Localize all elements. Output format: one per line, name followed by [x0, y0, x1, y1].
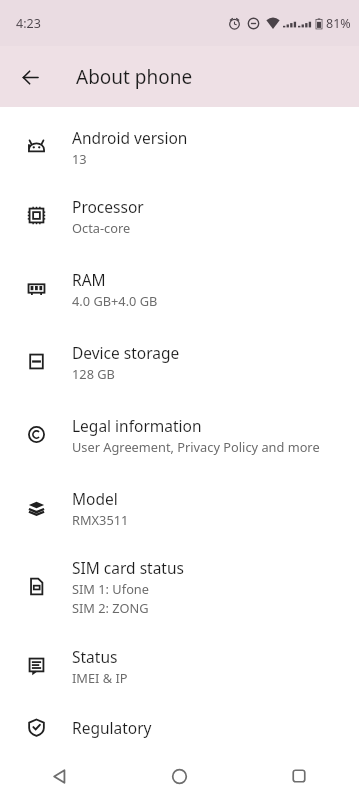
staticText: RAM [72, 269, 106, 290]
button[interactable]: Legal information [0, 398, 359, 471]
staticText: IMEI & IP [72, 669, 128, 686]
staticText: 4.0 GB+4.0 GB [72, 292, 158, 309]
button[interactable]: Regulatory [0, 702, 359, 752]
staticText: Status [72, 646, 118, 667]
button[interactable]: Status [0, 629, 359, 702]
staticText: RMX3511 [72, 511, 129, 528]
button[interactable]: RAM [0, 252, 359, 325]
button[interactable]: Model [0, 471, 359, 544]
button[interactable]: Device storage [0, 325, 359, 398]
staticText: About phone [76, 64, 193, 90]
staticText: Device storage [72, 342, 180, 363]
button[interactable]: Android version [0, 115, 359, 179]
staticText: 4:23 [16, 15, 41, 32]
button[interactable]: Processor [0, 179, 359, 252]
staticText: Android version [72, 127, 188, 148]
staticText: User Agreement, Privacy Policy and more [72, 438, 320, 455]
button[interactable]: SIM card status [0, 544, 359, 629]
staticText: 128 GB [72, 365, 115, 382]
button[interactable]: Back [12, 59, 48, 95]
staticText: Legal information [72, 415, 202, 436]
staticText: Model [72, 488, 118, 509]
staticText: 13 [72, 150, 87, 167]
button[interactable]: Back [0, 752, 119, 800]
staticText: Regulatory [72, 717, 152, 738]
staticText: SIM card status [72, 557, 184, 578]
staticText: 81% [326, 15, 351, 32]
staticText: SIM 2: ZONG [72, 599, 149, 616]
staticText: Processor [72, 196, 144, 217]
button[interactable]: Home [119, 752, 239, 800]
staticText: Octa-core [72, 219, 131, 236]
staticText: SIM 1: Ufone [72, 580, 149, 597]
button[interactable]: Recent apps [239, 752, 359, 800]
